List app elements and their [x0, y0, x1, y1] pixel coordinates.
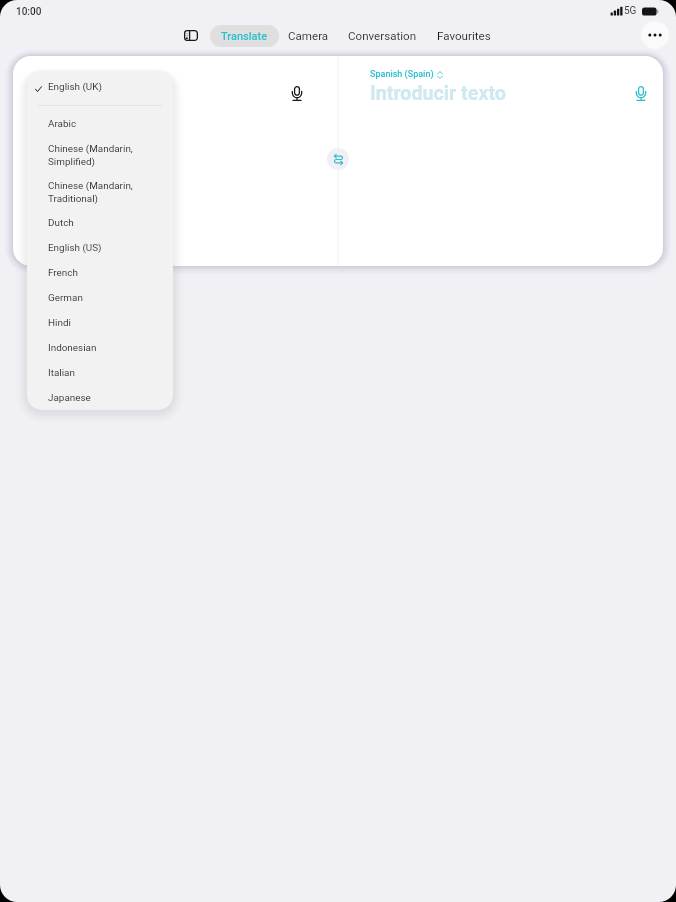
button[interactable]: Favourites: [434, 25, 494, 47]
button[interactable]: Italian: [27, 360, 173, 385]
staticText: Favourites: [437, 29, 491, 43]
staticText: Indonesian: [48, 342, 97, 354]
staticText: 10:00: [16, 6, 42, 18]
staticText: Chinese (Mandarin, Simplified): [48, 143, 165, 167]
staticText: French: [48, 267, 78, 279]
button[interactable]: Hindi: [27, 310, 173, 335]
button[interactable]: Swap languages: [327, 148, 349, 170]
button[interactable]: German: [27, 285, 173, 310]
staticText: German: [48, 292, 83, 304]
button[interactable]: Japanese: [27, 385, 173, 410]
button[interactable]: English (US): [27, 235, 173, 260]
button[interactable]: French: [27, 260, 173, 285]
staticText: Spanish (Spain): [370, 69, 434, 80]
staticText: English (US): [48, 242, 102, 254]
staticText: Italian: [48, 367, 75, 379]
staticText: Hindi: [48, 317, 71, 329]
staticText: Dutch: [48, 217, 74, 229]
staticText: Conversation: [348, 29, 417, 43]
button[interactable]: Spanish (Spain): [370, 69, 443, 80]
staticText: Chinese (Mandarin, Traditional): [48, 180, 165, 204]
button[interactable]: Conversation: [345, 25, 419, 47]
button[interactable]: Speak English: [285, 81, 309, 105]
button[interactable]: Dutch: [27, 210, 173, 235]
button[interactable]: More options: [641, 21, 669, 49]
staticText: Translate: [221, 30, 268, 43]
button[interactable]: Camera: [285, 25, 331, 47]
button[interactable]: Translate: [210, 25, 279, 47]
button[interactable]: Sidebar: [182, 26, 200, 44]
button[interactable]: Chinese (Mandarin, Traditional): [27, 173, 173, 210]
button[interactable]: Indonesian: [27, 335, 173, 360]
button[interactable]: Chinese (Mandarin, Simplified): [27, 136, 173, 173]
staticText: 5G: [624, 5, 637, 17]
button[interactable]: English (UK): [27, 75, 173, 99]
staticText: Japanese: [48, 392, 91, 404]
staticText: Camera: [288, 29, 329, 43]
button[interactable]: Arabic: [27, 111, 173, 136]
staticText: Arabic: [48, 118, 77, 130]
staticText: English (UK): [48, 81, 102, 93]
button[interactable]: Speak Spanish: [629, 81, 653, 105]
staticText: Introducir texto: [370, 82, 506, 105]
